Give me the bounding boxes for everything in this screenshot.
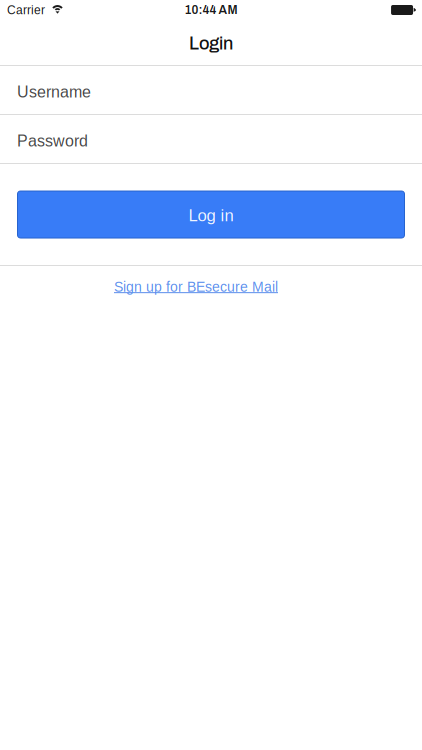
button[interactable]: Sign up for BEsecure Mail xyxy=(114,279,278,295)
staticText: Sign up for BEsecure Mail xyxy=(114,279,278,295)
staticText: Log in xyxy=(188,206,233,225)
staticText: Carrier xyxy=(7,3,45,17)
staticText: Login xyxy=(189,34,233,53)
button[interactable]: Password xyxy=(0,115,422,163)
staticText: 10:44 AM xyxy=(184,3,237,17)
button[interactable]: Username xyxy=(0,66,422,114)
staticText: Password xyxy=(17,132,88,150)
staticText: Username xyxy=(17,83,91,101)
button[interactable]: Log in xyxy=(17,191,404,238)
